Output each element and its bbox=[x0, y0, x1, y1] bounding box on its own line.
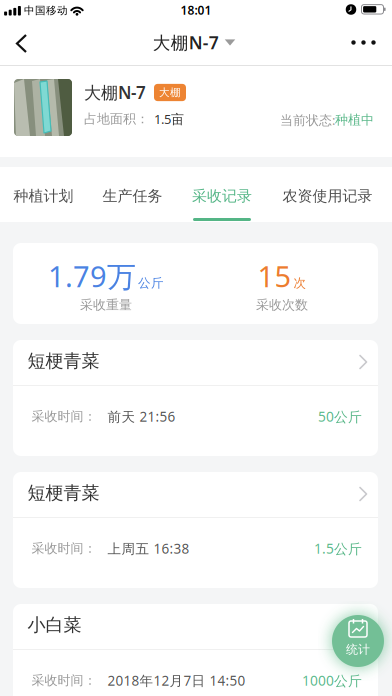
staticText: 上周五 16:38 bbox=[107, 539, 189, 558]
staticText: 1000公斤 bbox=[302, 671, 362, 690]
button[interactable]: 农资使用记录 bbox=[282, 169, 372, 223]
staticText: 采收时间： bbox=[31, 672, 96, 689]
staticText: 短梗青菜 bbox=[27, 482, 99, 504]
staticText: 小白菜 bbox=[27, 614, 81, 636]
staticText: 种植计划 bbox=[13, 187, 73, 205]
button[interactable]: 种植计划 bbox=[13, 169, 73, 223]
staticText: 生产任务 bbox=[102, 187, 162, 205]
staticText: 1.5公斤 bbox=[314, 539, 362, 558]
staticText: 当前状态: bbox=[280, 111, 335, 129]
button[interactable]: 采收记录 bbox=[192, 169, 252, 223]
button[interactable]: More bbox=[341, 22, 385, 62]
button[interactable]: 统计 bbox=[326, 609, 390, 673]
staticText: 占地面积： bbox=[84, 111, 149, 127]
button[interactable]: 短梗青菜 bbox=[13, 340, 378, 456]
button[interactable]: Back bbox=[0, 22, 44, 65]
staticText: 采收记录 bbox=[192, 187, 252, 205]
staticText: 18:01 bbox=[180, 2, 211, 18]
button[interactable]: 短梗青菜 bbox=[13, 472, 378, 588]
staticText: 种植中 bbox=[335, 112, 374, 128]
staticText: 统计 bbox=[346, 642, 370, 657]
staticText: 采收次数 bbox=[256, 297, 308, 313]
staticText: 大棚 bbox=[159, 86, 181, 99]
staticText: 1.5亩 bbox=[154, 110, 184, 128]
staticText: 短梗青菜 bbox=[27, 350, 99, 372]
staticText: 次 bbox=[293, 275, 306, 291]
staticText: 采收时间： bbox=[31, 540, 96, 557]
staticText: 15 bbox=[257, 256, 291, 296]
staticText: 50公斤 bbox=[318, 407, 362, 426]
staticText: 中国移动 bbox=[24, 4, 68, 17]
staticText: 前天 21:56 bbox=[107, 407, 175, 426]
staticText: 2018年12月7日 14:50 bbox=[107, 671, 245, 690]
staticText: 采收时间： bbox=[31, 408, 96, 425]
button[interactable]: 切换大棚 bbox=[153, 31, 235, 54]
staticText: 大棚N-7 bbox=[153, 31, 219, 54]
button[interactable]: 小白菜 bbox=[13, 604, 378, 696]
button[interactable]: 生产任务 bbox=[102, 169, 162, 223]
staticText: 大棚N-7 bbox=[84, 81, 146, 104]
staticText: 1.79万 bbox=[48, 256, 136, 296]
staticText: 农资使用记录 bbox=[282, 187, 372, 205]
staticText: 公斤 bbox=[138, 275, 164, 291]
staticText: 采收重量 bbox=[80, 297, 132, 313]
